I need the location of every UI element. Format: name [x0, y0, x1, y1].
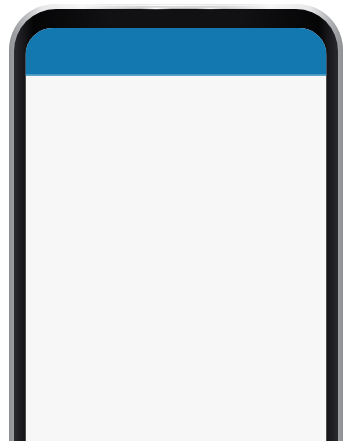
button[interactable]: Phone device preview — [0, 0, 352, 441]
